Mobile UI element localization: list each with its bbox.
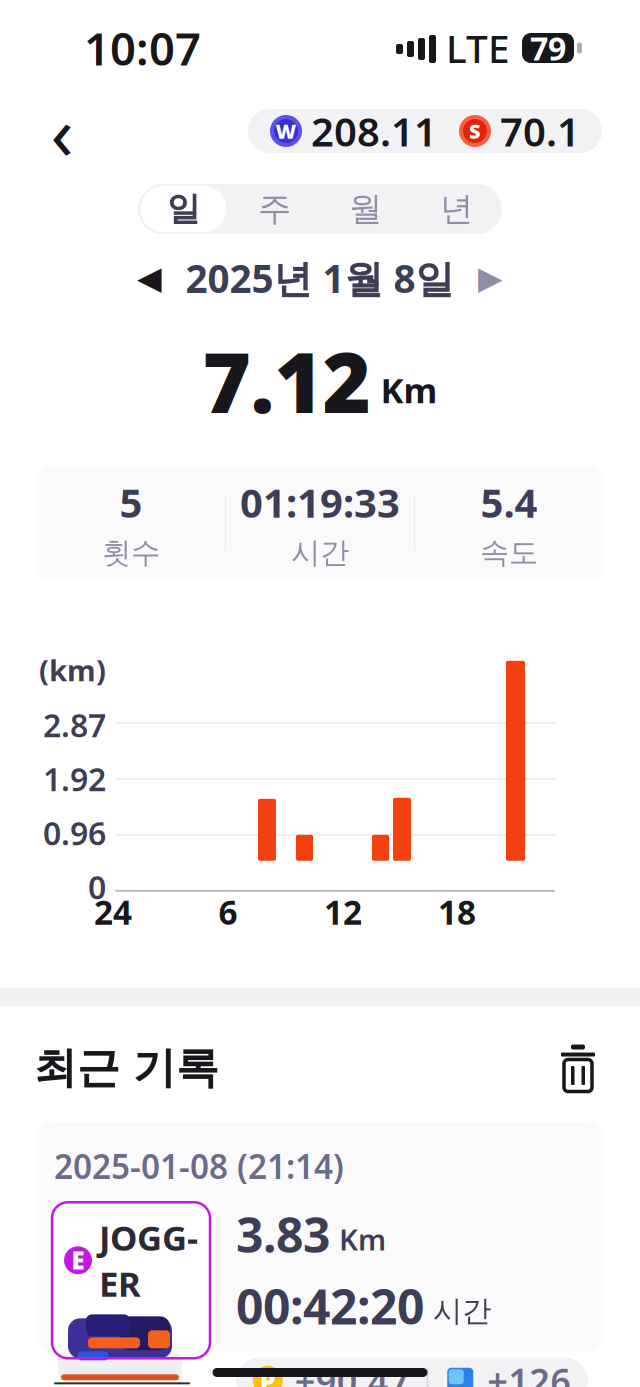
staticText: 10:07 bbox=[84, 18, 201, 78]
staticText: 0 bbox=[88, 865, 106, 908]
staticText: 7.12 bbox=[202, 326, 370, 436]
staticText: 12 bbox=[324, 890, 362, 934]
staticText: ▶ bbox=[478, 260, 503, 296]
staticText: W bbox=[275, 118, 296, 144]
staticText: JOGGER bbox=[99, 1214, 198, 1306]
staticText: 2025-01-08 (21:14) bbox=[54, 1144, 344, 1188]
button[interactable]: 주 bbox=[229, 184, 320, 234]
staticText: 월 bbox=[349, 188, 382, 229]
staticText: 6 bbox=[218, 890, 237, 934]
staticText: 24 bbox=[94, 890, 132, 934]
staticText: 0.96 bbox=[43, 811, 106, 854]
staticText: 1.92 bbox=[43, 757, 106, 800]
staticText: 79 bbox=[530, 27, 566, 69]
staticText: 2025년 1월 8일 bbox=[185, 252, 454, 304]
staticText: Km bbox=[380, 367, 437, 413]
staticText: 3.83 bbox=[236, 1202, 330, 1266]
button[interactable]: Next day bbox=[464, 252, 516, 304]
button[interactable]: 일 bbox=[138, 184, 229, 234]
button[interactable]: Previous day bbox=[123, 252, 175, 304]
staticText: 5.4 bbox=[480, 476, 537, 529]
staticText: ◀ bbox=[137, 260, 162, 296]
staticText: 일 bbox=[167, 188, 200, 229]
staticText: 횟수 bbox=[102, 535, 160, 571]
staticText: P bbox=[260, 1364, 276, 1387]
button[interactable]: 월 bbox=[320, 184, 411, 234]
staticText: 5 bbox=[119, 476, 142, 529]
button[interactable]: 2025-01-08 (21:14) bbox=[36, 1122, 604, 1352]
staticText: 시간 bbox=[433, 1293, 491, 1329]
staticText: +90.47 bbox=[295, 1357, 410, 1387]
staticText: E bbox=[71, 1244, 84, 1276]
staticText: (km) bbox=[39, 650, 106, 689]
staticText: +126 bbox=[487, 1357, 571, 1387]
button[interactable]: W bbox=[248, 109, 602, 153]
staticText: 2.87 bbox=[43, 703, 106, 746]
button[interactable]: Back bbox=[30, 99, 94, 163]
staticText: 시간 bbox=[291, 535, 349, 571]
staticText: LTE bbox=[446, 22, 510, 74]
staticText: 주 bbox=[258, 188, 291, 229]
staticText: S bbox=[469, 118, 481, 144]
staticText: 70.1 bbox=[500, 104, 580, 157]
button[interactable]: Delete records bbox=[550, 1040, 606, 1096]
staticText: 01:19:33 bbox=[240, 476, 400, 529]
staticText: Km bbox=[339, 1220, 386, 1259]
staticText: 18 bbox=[438, 890, 476, 934]
staticText: 최근 기록 bbox=[34, 1042, 219, 1094]
button[interactable]: 년 bbox=[411, 184, 502, 234]
staticText: 00:42:20 bbox=[236, 1274, 424, 1338]
staticText: 년 bbox=[440, 188, 473, 229]
staticText: 속도 bbox=[480, 535, 538, 571]
staticText: 208.11 bbox=[311, 104, 437, 157]
staticText: ‹ bbox=[50, 81, 73, 181]
